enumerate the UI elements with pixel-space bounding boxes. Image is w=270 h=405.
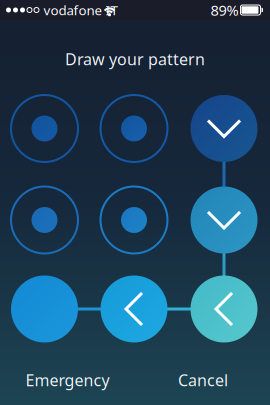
button[interactable]: Emergency [25,369,109,391]
staticText: Cancel [178,369,228,391]
button[interactable]: Cancel [178,369,228,391]
staticText: Emergency [25,369,109,391]
staticText: vodafone IT [43,1,117,19]
staticText: Draw your pattern [65,48,205,70]
staticText: 89% [210,0,238,20]
